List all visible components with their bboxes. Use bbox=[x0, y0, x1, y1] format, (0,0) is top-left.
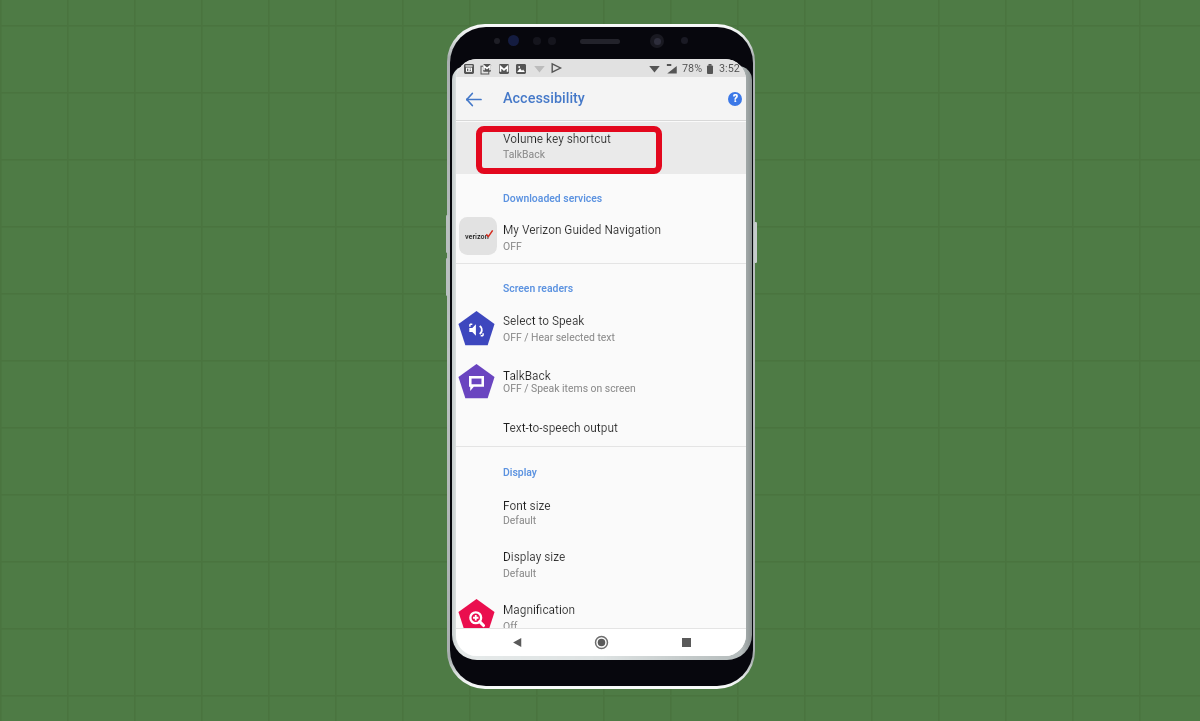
staticText: verizon bbox=[465, 232, 489, 240]
staticText: Default bbox=[503, 567, 537, 579]
staticText: Font size bbox=[503, 499, 551, 513]
button[interactable] bbox=[456, 364, 746, 419]
staticText: OFF / Speak items on screen bbox=[503, 382, 636, 394]
button[interactable] bbox=[456, 282, 746, 362]
staticText: Screen readers bbox=[503, 282, 574, 294]
button[interactable]: Help bbox=[723, 87, 746, 111]
staticText: Text-to-speech output bbox=[503, 421, 618, 435]
staticText: TalkBack bbox=[503, 369, 551, 383]
button[interactable] bbox=[456, 595, 746, 629]
staticText: TalkBack bbox=[503, 148, 545, 160]
staticText: Display size bbox=[503, 550, 566, 564]
staticText: 3:52 bbox=[719, 62, 740, 75]
staticText: OFF / Hear selected text bbox=[503, 331, 615, 343]
button[interactable]: Recent apps bbox=[672, 628, 700, 656]
staticText: Volume key shortcut bbox=[503, 132, 611, 146]
button[interactable] bbox=[456, 489, 746, 539]
staticText: Off bbox=[503, 620, 518, 632]
staticText: ? bbox=[733, 93, 738, 105]
staticText: Select to Speak bbox=[503, 314, 585, 328]
button[interactable]: Home bbox=[587, 628, 615, 656]
staticText: OFF bbox=[503, 240, 522, 252]
button[interactable]: Navigate up bbox=[461, 87, 485, 111]
button[interactable] bbox=[456, 542, 746, 592]
button[interactable]: Volume key shortcut bbox=[456, 122, 746, 174]
staticText: Downloaded services bbox=[503, 192, 603, 204]
button[interactable] bbox=[456, 421, 746, 446]
button[interactable] bbox=[456, 192, 746, 263]
staticText: My Verizon Guided Navigation bbox=[503, 223, 661, 237]
staticText: Default bbox=[503, 514, 537, 526]
staticText: Magnification bbox=[503, 603, 576, 617]
staticText: Accessibility bbox=[503, 90, 585, 107]
staticText: Display bbox=[503, 466, 537, 478]
button[interactable]: Back bbox=[503, 628, 531, 656]
staticText: 78% bbox=[682, 62, 703, 75]
